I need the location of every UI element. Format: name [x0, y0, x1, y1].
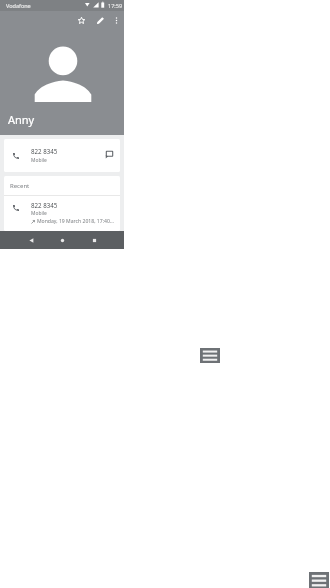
button[interactable]: Back [21, 231, 42, 249]
staticText: Anny [8, 112, 35, 127]
button[interactable]: 822 8345 [4, 196, 120, 231]
button[interactable]: Home [52, 231, 73, 249]
staticText: Mobile [31, 157, 47, 164]
button[interactable]: Edit [92, 11, 108, 29]
button[interactable]: Recent apps [84, 231, 105, 249]
staticText: Vodafone [6, 2, 31, 9]
staticText: Mobile [31, 210, 47, 217]
button[interactable]: 822 8345 [4, 139, 120, 172]
button[interactable]: Menu [200, 348, 220, 363]
button[interactable]: Menu [309, 572, 329, 588]
staticText: 822 8345 [31, 201, 58, 209]
button[interactable]: More options [108, 11, 124, 29]
button[interactable]: Send message [99, 139, 120, 172]
staticText: 822 8345 [31, 147, 58, 155]
button[interactable]: Favorite [70, 11, 92, 29]
staticText: 17:59 [108, 2, 123, 9]
staticText: Recent [10, 182, 30, 190]
staticText: Monday, 19 March 2018, 17:40... [37, 218, 114, 225]
